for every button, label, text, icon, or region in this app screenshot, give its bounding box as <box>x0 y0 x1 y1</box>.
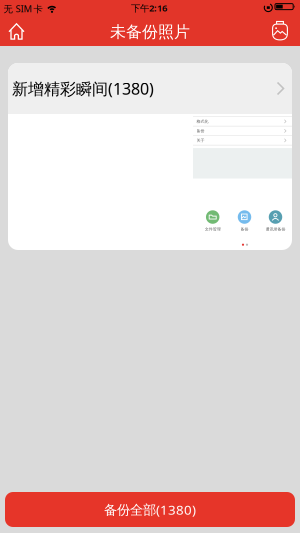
staticText: 备份 <box>240 227 248 232</box>
staticText: 下午2:16 <box>131 2 167 14</box>
staticText: 备份全部(1380) <box>104 501 196 518</box>
button[interactable]: 备份全部(1380) <box>5 492 295 527</box>
staticText: 关于 <box>197 138 205 143</box>
staticText: 文件管理 <box>205 227 221 232</box>
staticText: 通讯录备份 <box>265 227 285 232</box>
staticText: 未备份照片 <box>110 22 190 42</box>
staticText: 备份 <box>197 128 205 133</box>
staticText: 新增精彩瞬间(1380) <box>12 78 154 99</box>
button[interactable]: Home <box>1 16 31 46</box>
staticText: 无 SIM 卡 <box>3 2 42 15</box>
button[interactable]: Photo drive <box>265 16 295 46</box>
button[interactable]: 新增精彩瞬间(1380) <box>8 63 292 114</box>
staticText: 格式化 <box>197 119 209 124</box>
